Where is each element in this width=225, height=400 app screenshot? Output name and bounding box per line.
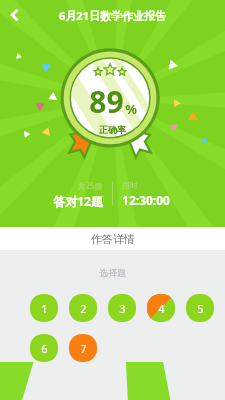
button[interactable]: 4 xyxy=(147,294,175,322)
staticText: 答对12题 xyxy=(53,193,103,209)
button[interactable]: Back xyxy=(0,0,30,30)
staticText: % xyxy=(125,100,137,118)
staticText: 作答详情 xyxy=(91,232,135,246)
staticText: 89 xyxy=(89,81,124,122)
staticText: 6月21日数学作业报告 xyxy=(59,8,166,23)
button[interactable]: 6 xyxy=(30,334,58,362)
staticText: 选择题 xyxy=(99,267,126,278)
staticText: 3 xyxy=(119,301,126,316)
staticText: 6 xyxy=(41,341,48,356)
staticText: 1 xyxy=(41,301,48,316)
button[interactable]: 3 xyxy=(108,294,136,322)
staticText: 12:30:00 xyxy=(122,192,170,208)
button[interactable]: 7 xyxy=(69,334,97,362)
staticText: 2 xyxy=(80,301,87,316)
staticText: 用时 xyxy=(122,180,138,190)
button[interactable]: 1 xyxy=(30,294,58,322)
staticText: 7 xyxy=(80,341,87,356)
button[interactable]: 2 xyxy=(69,294,97,322)
staticText: 正确率 xyxy=(99,124,126,135)
staticText: 共25题 xyxy=(77,180,103,191)
staticText: 5 xyxy=(197,301,204,316)
button[interactable]: 5 xyxy=(186,294,214,322)
staticText: 4 xyxy=(158,301,165,316)
